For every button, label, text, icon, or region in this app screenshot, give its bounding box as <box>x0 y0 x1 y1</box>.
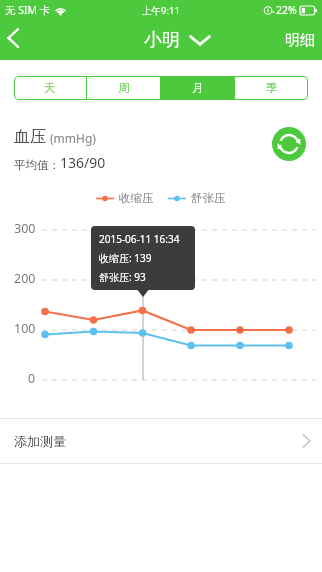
button[interactable]: 添加测量 <box>0 419 322 463</box>
staticText: 0 <box>28 370 36 387</box>
staticText: 无 SIM 卡 <box>5 3 51 17</box>
button[interactable]: 月 <box>161 76 234 100</box>
button[interactable]: Back <box>0 20 40 60</box>
staticText: 天 <box>44 81 56 95</box>
staticText: 22% <box>276 3 297 17</box>
staticText: 200 <box>14 270 36 287</box>
button[interactable]: 明细 <box>273 23 322 58</box>
staticText: 上午9:11 <box>142 4 180 17</box>
staticText: 2015-06-11 16:34 <box>99 232 180 246</box>
button[interactable]: 季 <box>235 76 308 100</box>
staticText: 月 <box>192 81 204 95</box>
staticText: 舒张压 <box>191 191 226 205</box>
staticText: 收缩压: 139 <box>99 251 152 265</box>
staticText: 季 <box>266 81 278 95</box>
button[interactable]: Refresh <box>272 127 306 161</box>
staticText: 血压 <box>14 127 46 147</box>
staticText: 周 <box>118 81 130 95</box>
button[interactable]: 周 <box>87 76 160 100</box>
staticText: 小明 <box>144 29 180 52</box>
staticText: (mmHg) <box>50 130 96 146</box>
staticText: 100 <box>14 320 36 337</box>
staticText: 收缩压 <box>119 191 154 205</box>
staticText: 300 <box>14 220 36 237</box>
button[interactable]: 天 <box>14 76 86 100</box>
staticText: 明细 <box>285 31 315 50</box>
staticText: 平均值： <box>14 158 60 172</box>
staticText: 136/90 <box>60 153 106 172</box>
button[interactable]: 小明 <box>136 24 219 57</box>
staticText: 舒张压: 93 <box>99 270 146 284</box>
staticText: 添加测量 <box>14 433 66 449</box>
